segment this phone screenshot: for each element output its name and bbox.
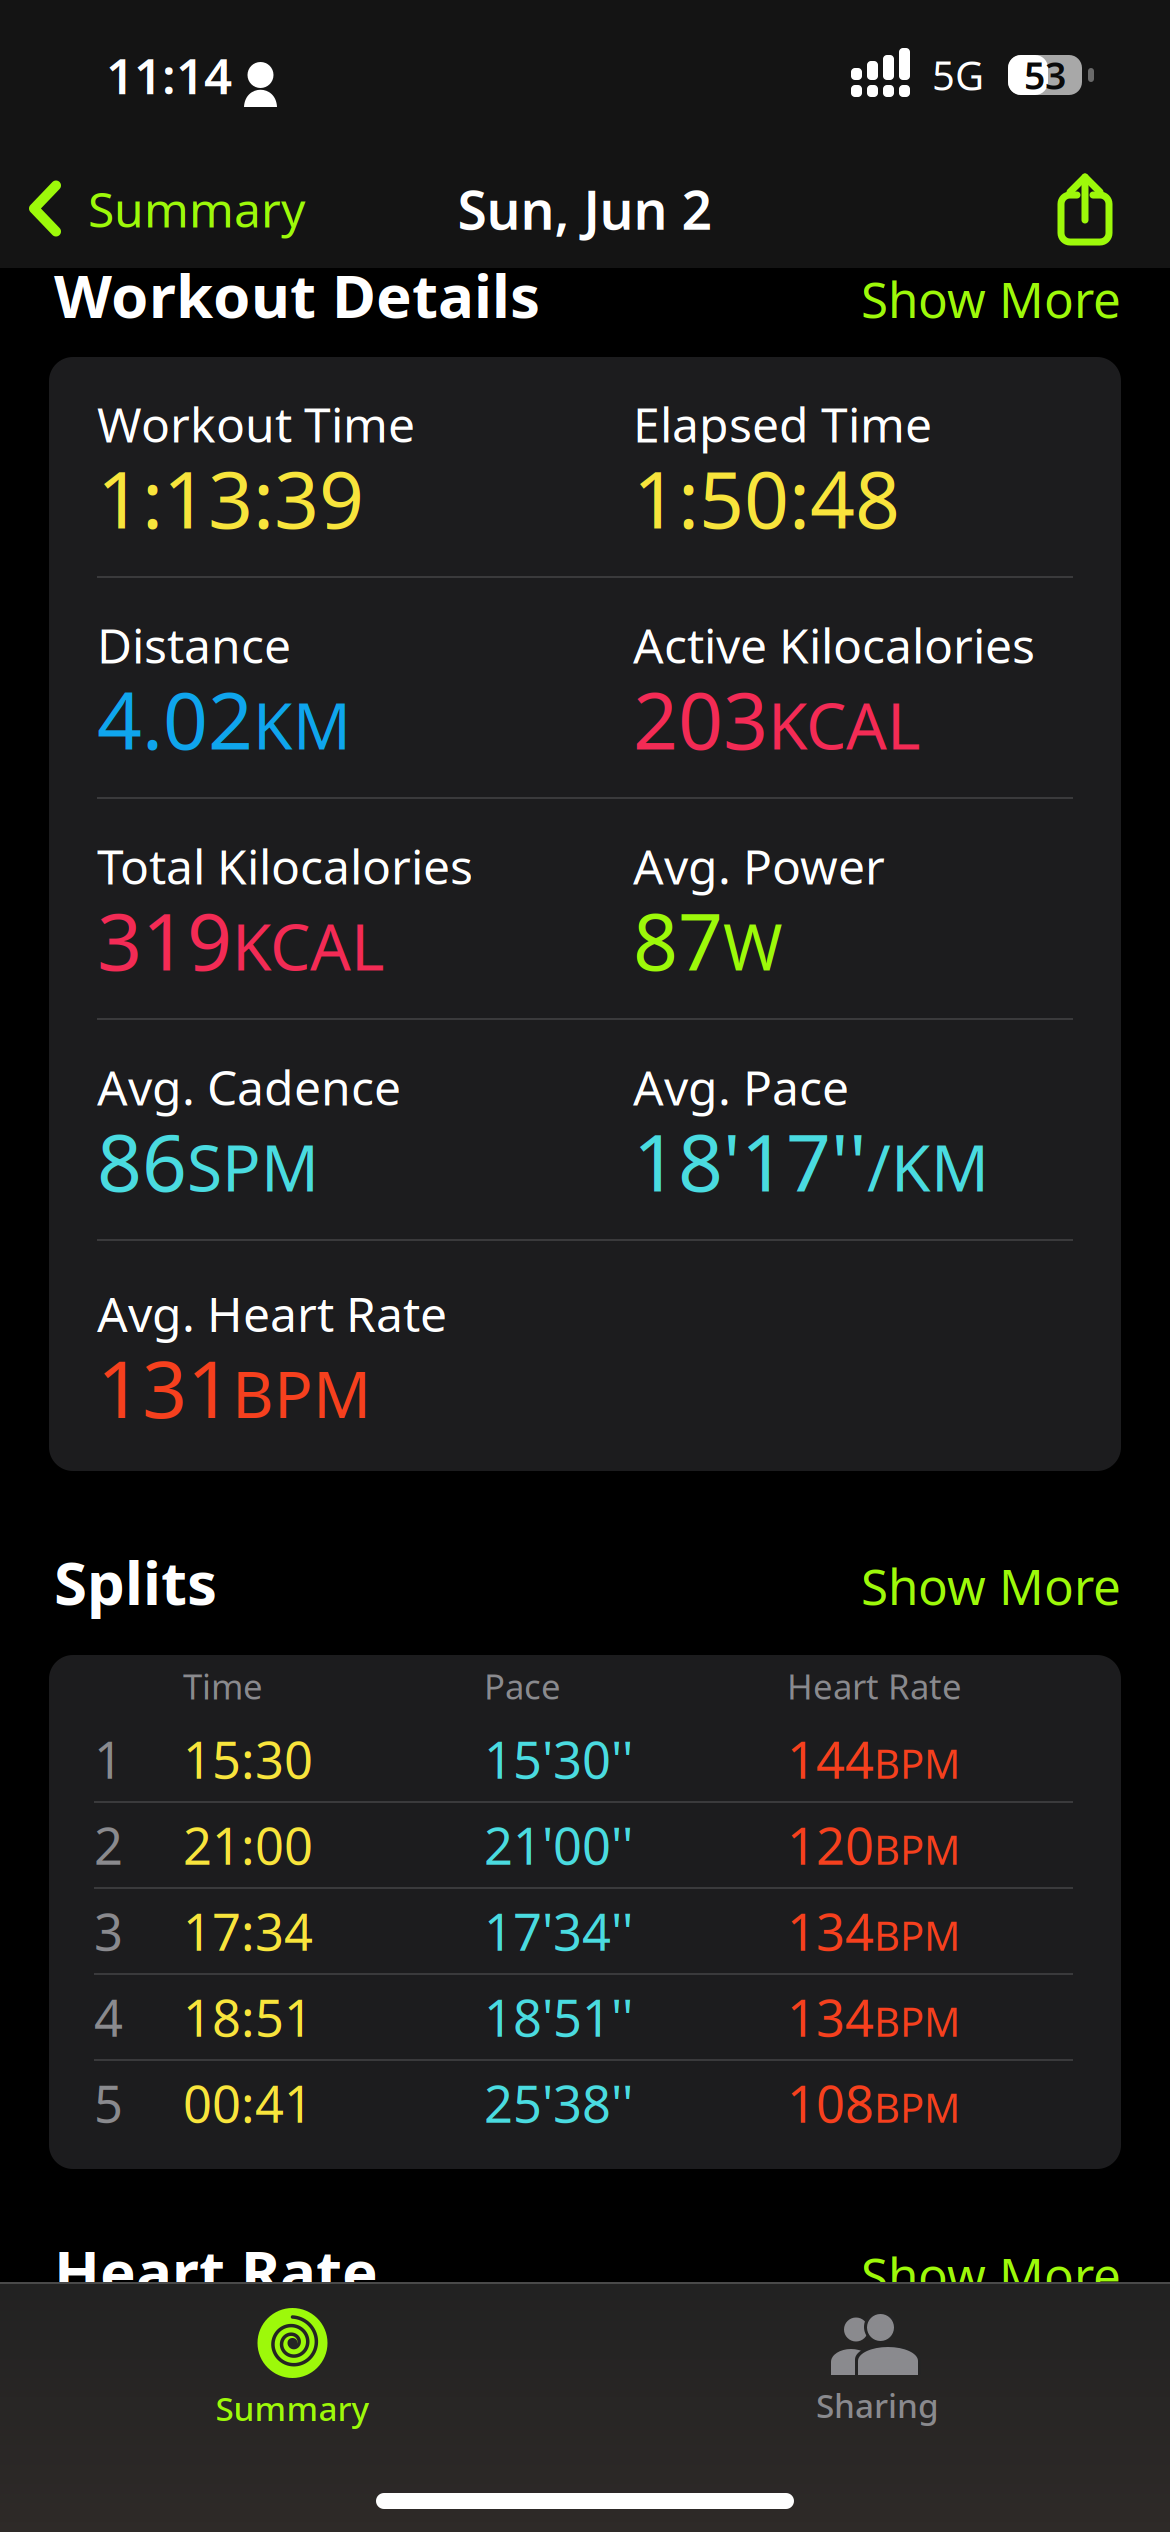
staticText: 00:41 <box>183 2069 313 2137</box>
staticText: KM <box>253 682 351 767</box>
staticText: 86 <box>97 1109 187 1213</box>
staticText: 17:34 <box>183 1897 313 1965</box>
staticText: 21'00'' <box>484 1811 633 1879</box>
staticText: 4.02 <box>97 667 253 771</box>
staticText: Show More <box>861 266 1121 332</box>
staticText: Workout Details <box>54 255 540 335</box>
button[interactable]: Show More <box>861 260 1121 338</box>
staticText: BPM <box>874 2081 960 2134</box>
staticText: 144 <box>787 1725 874 1793</box>
staticText: Avg. Pace <box>633 1055 849 1119</box>
button[interactable]: Share <box>1033 161 1170 257</box>
staticText: 134 <box>787 1983 874 2051</box>
staticText: Avg. Cadence <box>97 1055 401 1119</box>
staticText: Active Kilocalories <box>633 613 1035 677</box>
staticText: /KM <box>867 1124 989 1209</box>
staticText: SPM <box>187 1124 319 1209</box>
staticText: 18'51'' <box>484 1983 633 2051</box>
staticText: Sharing <box>816 2383 939 2427</box>
button[interactable]: Sharing <box>585 2299 1170 2439</box>
staticText: BPM <box>874 1995 960 2048</box>
staticText: 3 <box>94 1897 123 1965</box>
staticText: Workout Time <box>97 392 415 456</box>
staticText: 17'34'' <box>484 1897 633 1965</box>
staticText: Sun, Jun 2 <box>457 174 712 244</box>
staticText: Time <box>183 1663 263 1709</box>
staticText: 131 <box>97 1335 232 1440</box>
staticText: 5 <box>94 2069 123 2137</box>
staticText: BPM <box>874 1737 960 1790</box>
staticText: W <box>723 903 783 988</box>
button[interactable]: Summary <box>0 163 305 255</box>
staticText: Heart Rate <box>787 1663 962 1709</box>
staticText: 2 <box>94 1811 123 1879</box>
staticText: 25'38'' <box>484 2069 633 2137</box>
staticText: 18:51 <box>183 1983 313 2051</box>
staticText: 53 <box>1024 50 1066 100</box>
staticText: 4 <box>94 1983 123 2051</box>
staticText: Summary <box>215 2386 369 2430</box>
button[interactable]: Summary <box>0 2296 585 2442</box>
button[interactable]: Show More <box>861 2236 1121 2314</box>
staticText: Total Kilocalories <box>97 834 473 898</box>
staticText: Show More <box>861 1553 1121 1619</box>
staticText: KCAL <box>768 682 921 767</box>
staticText: Pace <box>484 1663 561 1709</box>
staticText: 18'17'' <box>633 1109 867 1213</box>
staticText: 1 <box>94 1725 123 1793</box>
staticText: Avg. Heart Rate <box>97 1281 447 1345</box>
staticText: 87 <box>633 888 723 992</box>
staticText: BPM <box>874 1909 960 1962</box>
staticText: Splits <box>54 1542 217 1622</box>
staticText: 108 <box>787 2069 874 2137</box>
staticText: 15'30'' <box>484 1725 633 1793</box>
staticText: 120 <box>787 1811 874 1879</box>
staticText: 203 <box>633 667 768 771</box>
staticText: 15:30 <box>183 1725 313 1793</box>
staticText: Distance <box>97 613 291 677</box>
staticText: Heart Rate <box>54 2231 378 2311</box>
staticText: 21:00 <box>183 1811 313 1879</box>
staticText: Avg. Power <box>633 834 885 898</box>
staticText: Summary <box>88 177 305 241</box>
staticText: 5G <box>932 48 984 101</box>
button[interactable]: Show More <box>861 1547 1121 1625</box>
staticText: 134 <box>787 1897 874 1965</box>
staticText: BPM <box>874 1823 960 1876</box>
staticText: 1:13:39 <box>97 446 364 550</box>
staticText: BPM <box>232 1351 371 1436</box>
staticText: KCAL <box>232 903 385 988</box>
staticText: 319 <box>97 888 232 992</box>
staticText: 1:50:48 <box>633 446 900 550</box>
staticText: Elapsed Time <box>633 392 932 456</box>
staticText: 11:14 <box>106 42 232 108</box>
staticText: Show More <box>861 2242 1121 2308</box>
